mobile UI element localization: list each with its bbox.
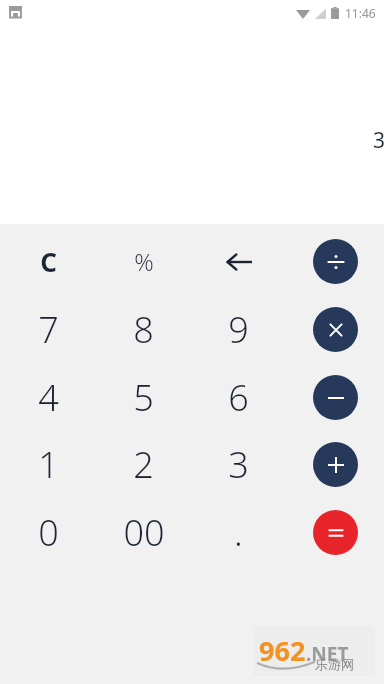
staticText: 0	[38, 508, 59, 557]
staticText: 962	[259, 632, 306, 669]
button[interactable]: Multiply	[313, 307, 358, 352]
staticText: 2	[133, 440, 154, 489]
staticText: 9	[228, 305, 249, 354]
button[interactable]: Minus	[313, 375, 358, 420]
staticText: %	[134, 245, 154, 278]
staticText: 4	[38, 373, 59, 422]
button[interactable]: 0	[1, 499, 96, 566]
button[interactable]: Plus	[313, 442, 358, 487]
button[interactable]: 3	[191, 431, 286, 498]
button[interactable]: 7	[1, 296, 96, 363]
staticText: 1	[38, 440, 59, 489]
staticText: 乐游网	[315, 656, 354, 672]
staticText: C	[40, 244, 57, 279]
staticText: .NET	[306, 641, 349, 667]
button[interactable]: 1	[1, 431, 96, 498]
staticText: 6	[228, 373, 249, 422]
button[interactable]: 2	[96, 431, 191, 498]
staticText: 7	[38, 305, 59, 354]
button[interactable]: 00	[96, 499, 191, 566]
button[interactable]: .	[191, 499, 286, 566]
staticText: 8	[133, 305, 154, 354]
button[interactable]: 9	[191, 296, 286, 363]
staticText: 11:46	[345, 5, 376, 21]
staticText: 3	[228, 440, 249, 489]
button[interactable]: %	[96, 228, 191, 295]
button[interactable]: 6	[191, 364, 286, 431]
staticText: .	[234, 508, 243, 557]
staticText: 3	[373, 126, 384, 155]
button[interactable]: Equals	[313, 510, 358, 555]
staticText: 5	[133, 373, 154, 422]
button[interactable]: 5	[96, 364, 191, 431]
button[interactable]: 4	[1, 364, 96, 431]
button[interactable]: C	[1, 228, 96, 295]
button[interactable]: Divide	[313, 239, 358, 284]
button[interactable]: Backspace	[191, 228, 286, 295]
button[interactable]: 8	[96, 296, 191, 363]
staticText: 00	[123, 508, 165, 557]
